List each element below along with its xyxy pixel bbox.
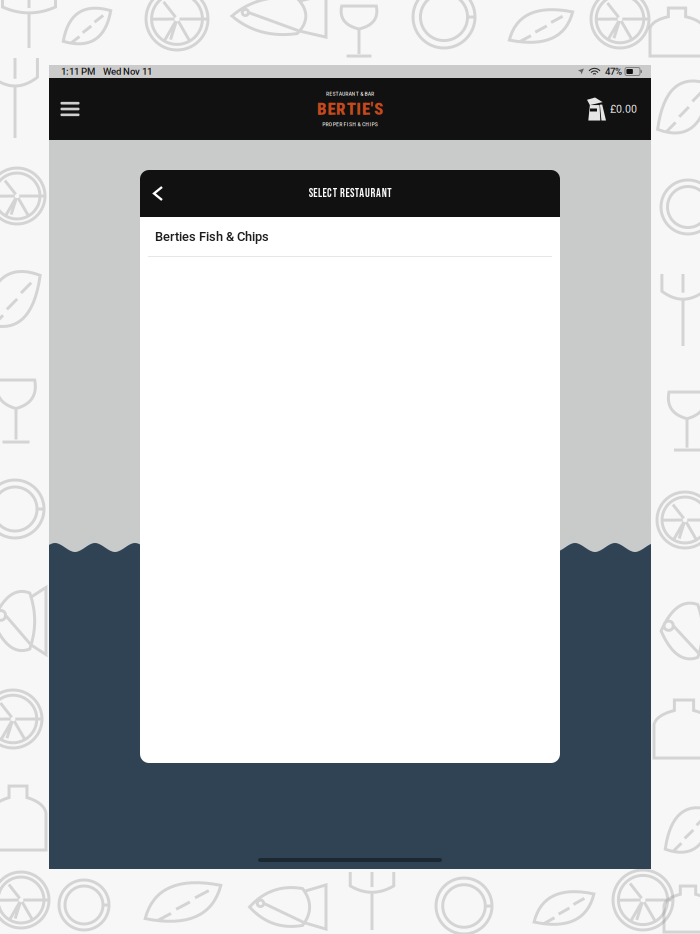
- staticText: R: [340, 186, 345, 201]
- staticText: ': [370, 99, 373, 119]
- staticText: [363, 90, 364, 97]
- staticText: E: [327, 99, 335, 119]
- staticText: [361, 121, 362, 128]
- staticText: T: [333, 186, 337, 201]
- staticText: L: [318, 186, 322, 201]
- staticText: I: [347, 121, 349, 128]
- staticText: P: [372, 121, 375, 128]
- staticText: R: [370, 186, 375, 201]
- staticText: Wed Nov 11: [103, 66, 152, 77]
- staticText: E: [345, 186, 349, 201]
- staticText: H: [352, 121, 356, 128]
- staticText: E: [322, 186, 326, 201]
- button[interactable]: £0.00: [587, 87, 637, 131]
- staticText: C: [362, 121, 365, 128]
- staticText: R: [371, 90, 374, 97]
- staticText: C: [327, 186, 332, 201]
- staticText: E: [362, 99, 370, 119]
- staticText: A: [368, 90, 371, 97]
- staticText: B: [317, 99, 327, 119]
- staticText: R: [339, 121, 342, 128]
- button[interactable]: Berties Fish & Chips: [140, 217, 560, 256]
- staticText: A: [359, 186, 364, 201]
- staticText: F: [344, 121, 347, 128]
- staticText: S: [332, 90, 335, 97]
- staticText: S: [350, 186, 354, 201]
- staticText: T: [355, 186, 359, 201]
- staticText: T: [347, 99, 356, 119]
- staticText: &: [358, 121, 361, 128]
- staticText: R: [326, 90, 329, 97]
- staticText: E: [313, 186, 317, 201]
- staticText: T: [356, 90, 359, 97]
- staticText: A: [376, 186, 381, 201]
- staticText: H: [365, 121, 369, 128]
- staticText: S: [349, 121, 352, 128]
- staticText: Berties Fish & Chips: [155, 229, 269, 244]
- staticText: &: [360, 90, 363, 97]
- staticText: O: [329, 121, 333, 128]
- staticText: S: [374, 99, 383, 119]
- staticText: P: [322, 121, 325, 128]
- staticText: E: [329, 90, 332, 97]
- staticText: R: [345, 90, 348, 97]
- staticText: N: [352, 90, 356, 97]
- button[interactable]: Menu: [49, 87, 91, 131]
- staticText: T: [387, 186, 391, 201]
- staticText: N: [382, 186, 387, 201]
- staticText: £0.00: [610, 103, 637, 115]
- staticText: S: [375, 121, 378, 128]
- staticText: A: [339, 90, 342, 97]
- staticText: 1:11 PM: [61, 66, 95, 77]
- staticText: A: [348, 90, 351, 97]
- staticText: B: [365, 90, 368, 97]
- staticText: [342, 121, 343, 128]
- staticText: T: [336, 90, 339, 97]
- staticText: 47%: [605, 66, 622, 77]
- staticText: U: [342, 90, 345, 97]
- staticText: S: [309, 186, 313, 201]
- staticText: I: [369, 121, 371, 128]
- staticText: E: [336, 121, 339, 128]
- button[interactable]: Back: [143, 170, 173, 217]
- staticText: I: [356, 99, 361, 119]
- staticText: U: [365, 186, 370, 201]
- staticText: R: [325, 121, 328, 128]
- staticText: P: [333, 121, 336, 128]
- staticText: R: [336, 99, 346, 119]
